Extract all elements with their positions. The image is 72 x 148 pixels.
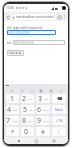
staticText: tel. type with required. (7, 25, 43, 29)
button[interactable]: Save data (7, 50, 24, 56)
staticText: (555) 555-5555 (8, 31, 30, 35)
button[interactable]: 2 (21, 94, 34, 103)
button[interactable]: Back (16, 138, 22, 144)
button[interactable]: More (58, 88, 63, 93)
staticText: WXYZ (43, 119, 50, 122)
button[interactable]: Emoji (19, 88, 24, 93)
staticText: TUV (28, 119, 33, 122)
button[interactable]: # (36, 127, 50, 136)
button[interactable]: * (6, 127, 19, 136)
staticText: (555) 555-5555 (14, 41, 34, 45)
staticText: Save data (9, 51, 22, 55)
staticText: 6 (37, 105, 42, 114)
button[interactable]: Next (52, 105, 66, 114)
button[interactable]: Backspace (52, 94, 66, 103)
button[interactable]: 1 (6, 94, 19, 103)
button[interactable]: 0 (21, 127, 34, 136)
staticText: MNO (43, 108, 49, 111)
staticText: # (41, 128, 45, 136)
staticText: 0 (24, 127, 29, 136)
button[interactable]: Reload (5, 14, 11, 20)
button[interactable]: Recents (51, 138, 57, 144)
button[interactable]: Suggestions (9, 88, 14, 93)
staticText: +*# (56, 118, 63, 123)
staticText: 10:30 (6, 6, 15, 10)
button[interactable]: More options (62, 14, 67, 19)
staticText: 5 (23, 105, 28, 114)
staticText: 4 (7, 105, 12, 114)
staticText: tel: (7, 41, 12, 45)
button[interactable]: GIF (29, 88, 34, 93)
staticText: standardbox.com/contact/clr (16, 15, 55, 19)
staticText: GHI (13, 108, 18, 111)
button[interactable]: Clipboard (38, 88, 43, 93)
staticText: PQRS (12, 119, 19, 122)
button[interactable]: Tabs (56, 14, 62, 20)
button[interactable]: Settings (48, 88, 53, 93)
button[interactable]: Home (33, 138, 39, 144)
staticText: Next (55, 107, 63, 112)
staticText: * (11, 128, 15, 136)
button[interactable]: 9 (36, 116, 50, 125)
button[interactable]: 6 (36, 105, 50, 114)
button[interactable]: (555) 555-5555 (13, 40, 65, 45)
staticText: , (58, 128, 60, 135)
staticText: DEF (44, 97, 49, 100)
button[interactable]: (555) 555-5555 (7, 30, 56, 35)
button[interactable]: standardbox.com/contact/clr (11, 14, 56, 20)
staticText: 2 (22, 94, 27, 103)
staticText: 7 (6, 116, 11, 125)
staticText: 9 (37, 116, 42, 125)
button[interactable]: 3 (36, 94, 50, 103)
button[interactable]: +*# (52, 116, 66, 125)
button[interactable]: 5 (21, 105, 34, 114)
button[interactable]: , (52, 127, 66, 136)
staticText: ABC (28, 97, 33, 100)
button[interactable]: 4 (6, 105, 19, 114)
staticText: 1 (10, 94, 15, 103)
staticText: + (30, 130, 32, 133)
staticText: JKL (29, 108, 33, 111)
staticText: 3 (38, 94, 43, 103)
staticText: 8 (22, 116, 27, 125)
button[interactable]: 7 (6, 116, 19, 125)
button[interactable]: 8 (21, 116, 34, 125)
